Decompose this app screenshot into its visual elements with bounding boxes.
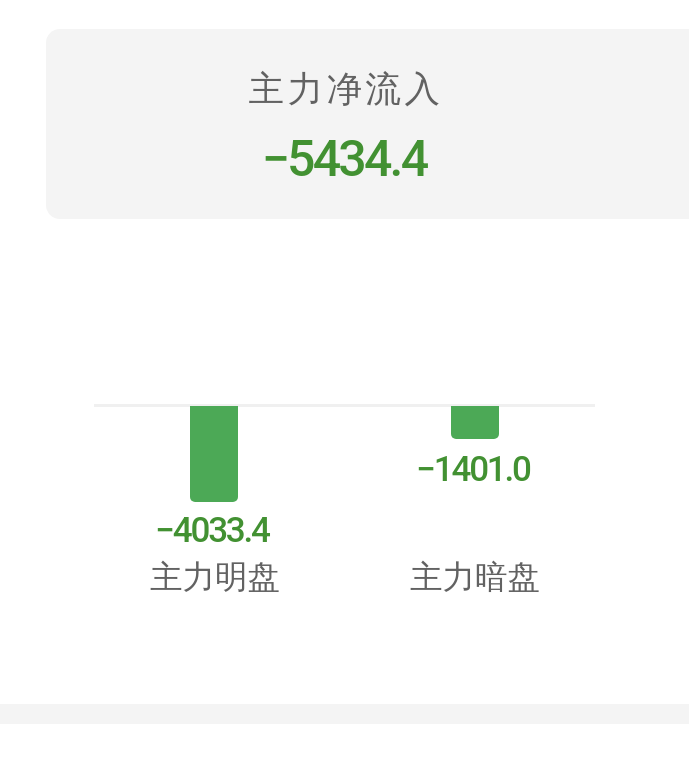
staticText: 主力净流入 (166, 67, 526, 112)
staticText: −5434.4 (164, 130, 524, 189)
button[interactable] (46, 29, 689, 219)
staticText: 主力明盘 (35, 557, 395, 598)
staticText: −1401.0 (293, 449, 653, 490)
button[interactable]: 主力暗盘 -1401.0 (391, 400, 559, 600)
staticText: 主力暗盘 (295, 557, 655, 598)
staticText: −4033.4 (32, 510, 392, 551)
button[interactable]: 主力明盘 -4033.4 (130, 400, 298, 600)
